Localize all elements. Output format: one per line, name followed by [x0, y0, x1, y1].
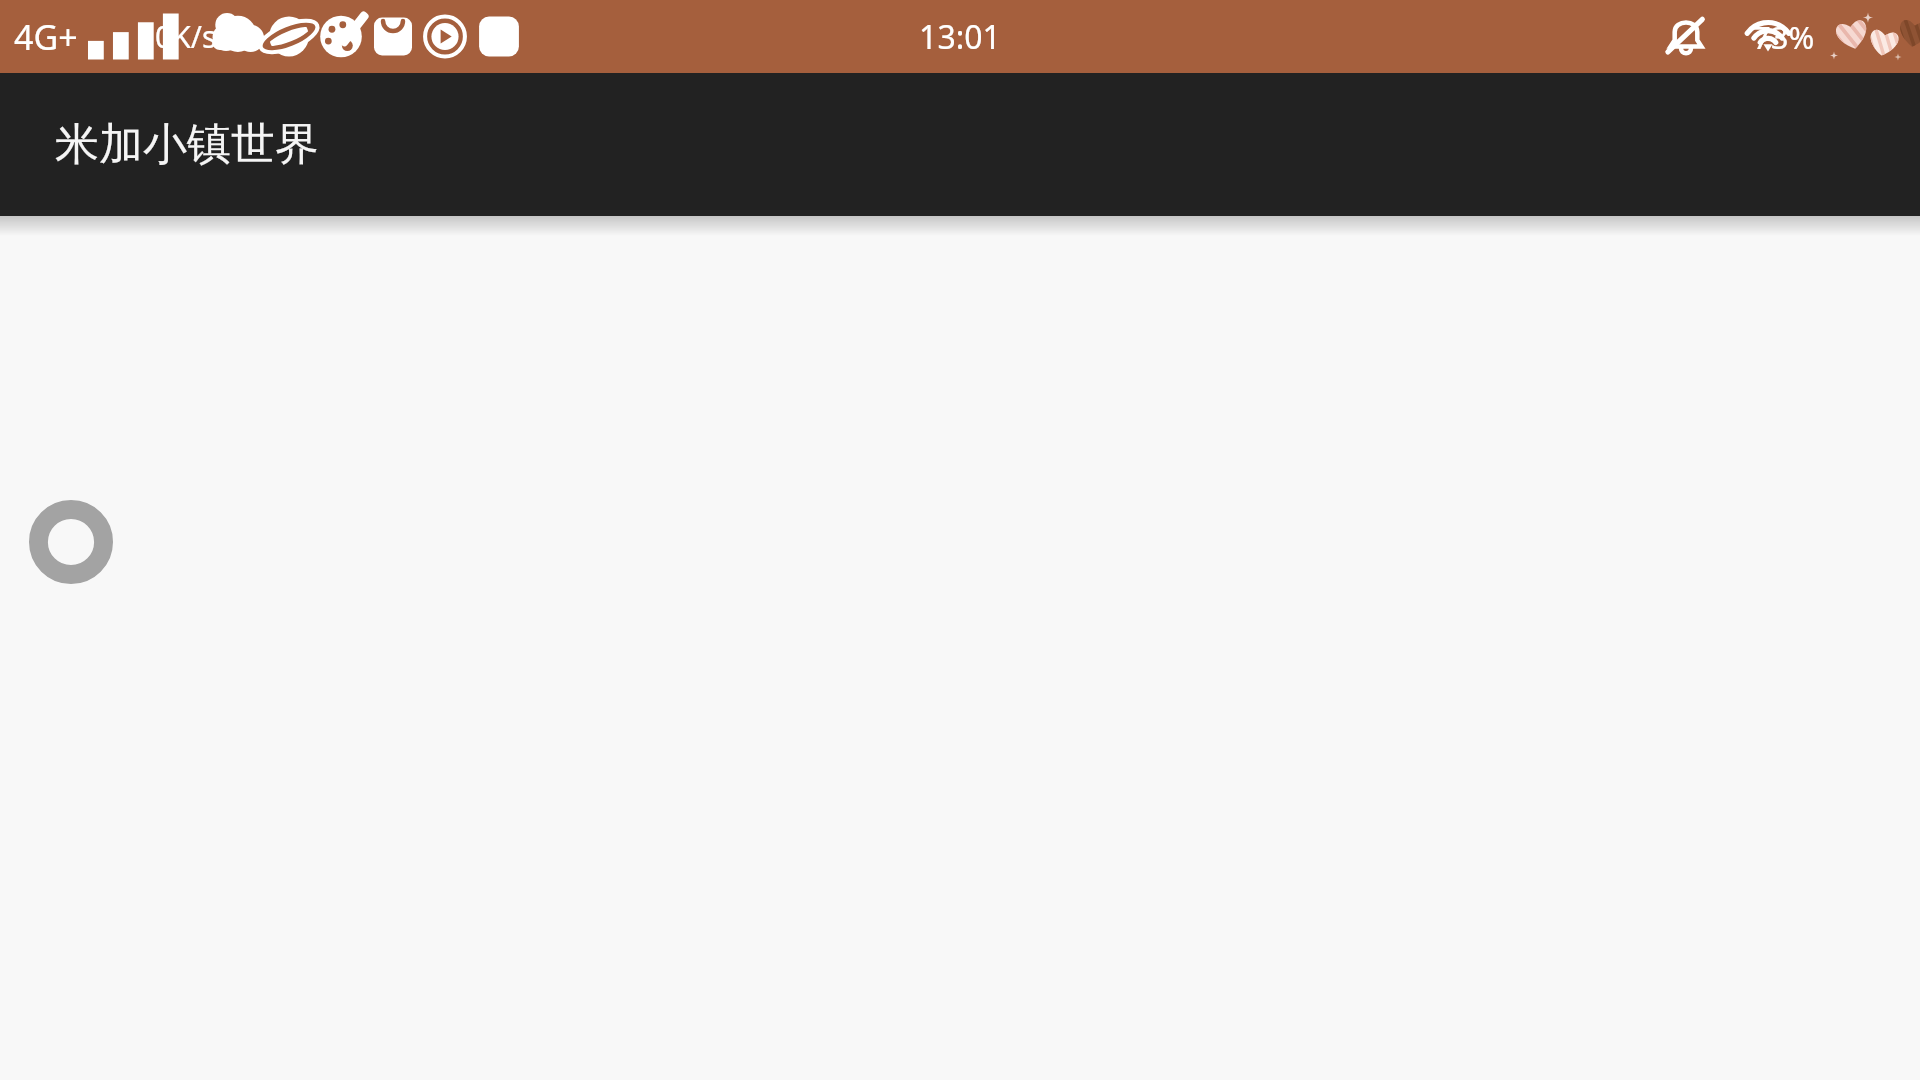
staticText: 13:01 — [919, 15, 1001, 59]
staticText: 4G+ — [14, 14, 78, 60]
staticText: 0K/s — [155, 16, 217, 57]
button[interactable]: 米加小镇世界 — [0, 73, 1920, 216]
other: Loading — [29, 500, 113, 584]
staticText: 73% — [1753, 16, 1815, 58]
staticText: 米加小镇世界 — [55, 117, 319, 172]
